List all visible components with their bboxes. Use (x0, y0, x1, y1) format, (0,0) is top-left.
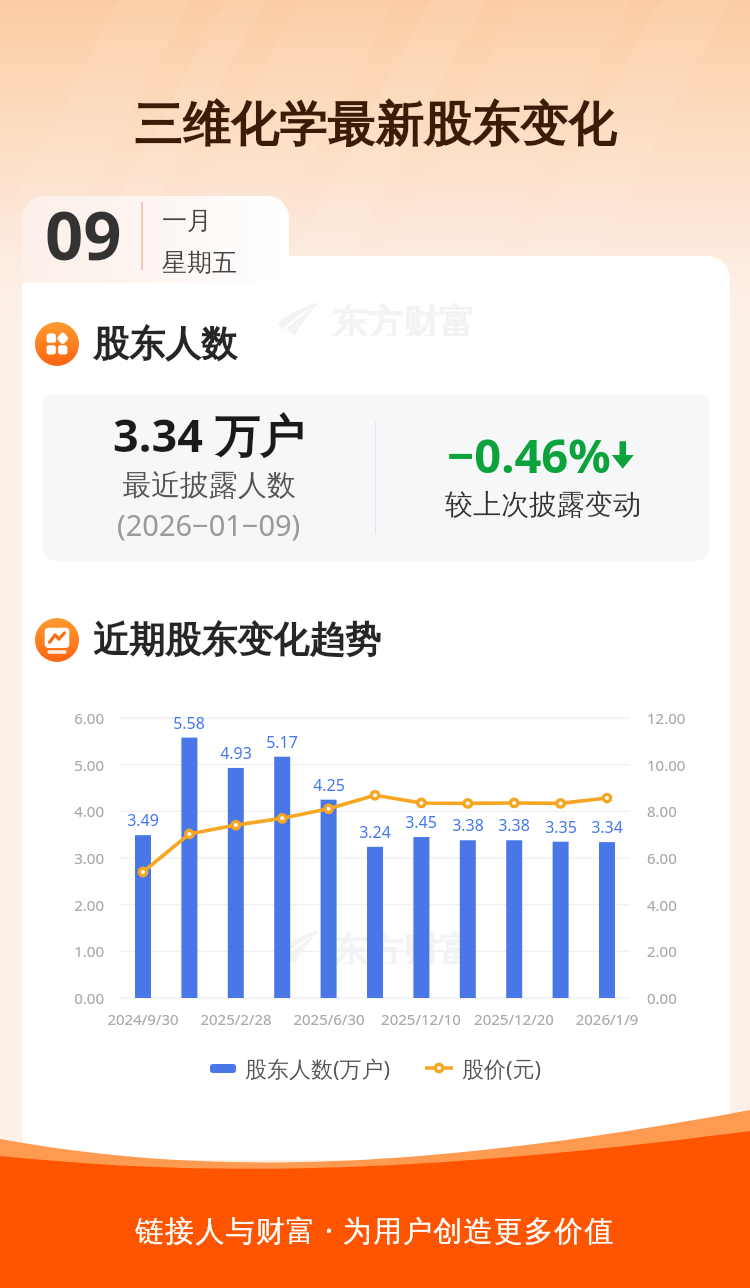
staticText: 8.00 (647, 801, 707, 821)
button[interactable]: 3.34 万户 (42, 394, 710, 561)
staticText: 2025/12/10 (351, 1009, 491, 1029)
staticText: 6.00 (44, 708, 104, 728)
staticText: 3.34 (577, 816, 637, 838)
staticText: 3.49 (113, 809, 173, 831)
staticText: 一月 (162, 205, 212, 236)
staticText: 3.38 (484, 814, 544, 836)
staticText: 最近披露人数 (122, 467, 296, 504)
staticText: 近期股东变化趋势 (93, 617, 381, 662)
staticText: 星期五 (162, 247, 237, 278)
staticText: 5.58 (159, 712, 219, 734)
button[interactable]: Trend (35, 617, 730, 662)
staticText: 股东人数(万户) (245, 1053, 391, 1083)
other: Trend (35, 618, 79, 662)
staticText: 2.00 (44, 895, 104, 915)
staticText: 12.00 (647, 708, 707, 728)
staticText: 链接人与财富 · 为用户创造更多价值 (135, 1210, 615, 1250)
staticText: 股价(元) (462, 1053, 542, 1083)
staticText: 4.93 (206, 742, 266, 764)
staticText: 较上次披露变动 (445, 487, 641, 522)
staticText: 3.35 (531, 816, 591, 838)
staticText: 10.00 (647, 755, 707, 775)
staticText: 5.00 (44, 755, 104, 775)
staticText: 4.00 (647, 895, 707, 915)
staticText: 0.00 (647, 988, 707, 1008)
staticText: 09 (45, 196, 122, 275)
staticText: 2026/1/9 (537, 1009, 677, 1029)
staticText: 0.00 (44, 988, 104, 1008)
staticText: 2.00 (647, 941, 707, 961)
staticText: 3.00 (44, 848, 104, 868)
staticText: −0.46% (447, 423, 611, 487)
other: Shareholders (35, 322, 79, 366)
staticText: 4.00 (44, 801, 104, 821)
staticText: 5.17 (252, 731, 312, 753)
staticText: 6.00 (647, 848, 707, 868)
staticText: 东方财富 (331, 928, 475, 964)
staticText: 东方财富 (331, 300, 475, 336)
staticText: 3.38 (438, 814, 498, 836)
staticText: 2025/2/28 (166, 1009, 306, 1029)
button[interactable]: Shareholders (35, 321, 730, 366)
staticText: 2024/9/30 (73, 1009, 213, 1029)
staticText: 3.34 万户 (113, 404, 305, 465)
staticText: (2026−01−09) (117, 505, 301, 544)
staticText: 3.24 (345, 821, 405, 843)
staticText: 2025/12/20 (444, 1009, 584, 1029)
staticText: 2025/6/30 (259, 1009, 399, 1029)
staticText: 股东人数 (93, 321, 237, 366)
staticText: 1.00 (44, 941, 104, 961)
staticText: 4.25 (299, 774, 359, 796)
staticText: 3.45 (391, 811, 451, 833)
staticText: 三维化学最新股东变化 (134, 95, 616, 155)
